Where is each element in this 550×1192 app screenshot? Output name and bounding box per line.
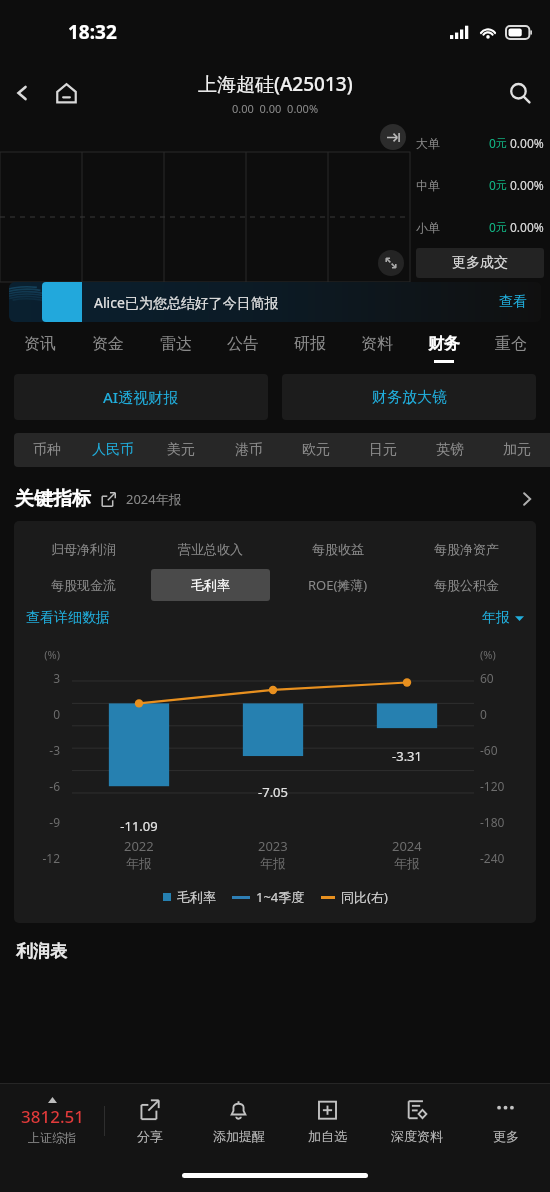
- staticText: 更多: [493, 1128, 519, 1144]
- staticText: 2024年报: [126, 490, 182, 508]
- button[interactable]: 每股现金流: [24, 569, 143, 601]
- button[interactable]: 每股收益: [278, 533, 398, 565]
- staticText: -7.05: [206, 783, 340, 801]
- button[interactable]: 财务: [410, 322, 477, 374]
- staticText: 1~4季度: [256, 888, 305, 906]
- staticText: 更多成交: [452, 254, 508, 272]
- staticText: 0.00%: [510, 219, 544, 235]
- staticText: 加自选: [308, 1128, 347, 1144]
- button[interactable]: 深度资料: [372, 1084, 461, 1158]
- staticText: 0: [489, 135, 496, 151]
- button[interactable]: Fullscreen: [378, 250, 404, 276]
- staticText: 每股公积金: [434, 577, 499, 593]
- staticText: 0.00 0.00 0.00%: [232, 101, 319, 116]
- button[interactable]: 欧元: [282, 433, 349, 467]
- staticText: 上证综指: [28, 1130, 76, 1145]
- button[interactable]: 3812.51: [0, 1097, 104, 1145]
- staticText: 大单: [416, 136, 440, 151]
- button[interactable]: 资讯: [6, 322, 74, 374]
- button[interactable]: ROE(摊薄): [278, 569, 398, 601]
- staticText: 归母净利润: [51, 541, 116, 557]
- button[interactable]: 资料: [343, 322, 410, 374]
- button[interactable]: 毛利率: [151, 569, 270, 601]
- button[interactable]: 研报: [276, 322, 343, 374]
- button[interactable]: 资金: [74, 322, 142, 374]
- staticText: 2023: [258, 837, 288, 855]
- staticText: 资金: [92, 334, 124, 354]
- button[interactable]: 更多成交: [416, 248, 544, 278]
- button[interactable]: Expand right: [380, 124, 406, 150]
- staticText: -120: [480, 778, 532, 794]
- button[interactable]: 归母净利润: [24, 533, 143, 565]
- staticText: 2022: [124, 837, 154, 855]
- button[interactable]: Search: [498, 71, 542, 115]
- staticText: 2024: [392, 837, 422, 855]
- button[interactable]: 营业总收入: [151, 533, 270, 565]
- button[interactable]: 人民币: [79, 433, 147, 467]
- staticText: 毛利率: [191, 577, 230, 593]
- staticText: 港币: [235, 441, 263, 459]
- staticText: 利润表: [16, 941, 67, 962]
- staticText: 元: [496, 220, 507, 234]
- staticText: -60: [480, 742, 532, 758]
- staticText: 财务放大镜: [372, 388, 447, 407]
- staticText: 3: [20, 670, 60, 686]
- staticText: 元: [496, 178, 507, 192]
- staticText: 欧元: [302, 441, 330, 459]
- staticText: AI透视财报: [103, 387, 179, 407]
- button[interactable]: 港币: [215, 433, 282, 467]
- button[interactable]: 查看详细数据: [26, 609, 110, 627]
- button[interactable]: 每股净资产: [406, 533, 526, 565]
- button[interactable]: 日元: [349, 433, 416, 467]
- staticText: -240: [480, 850, 532, 866]
- button[interactable]: 美元: [147, 433, 215, 467]
- staticText: 0: [20, 706, 60, 722]
- button[interactable]: 雷达: [142, 322, 209, 374]
- staticText: 元: [496, 136, 507, 150]
- button[interactable]: AI透视财报: [14, 374, 268, 420]
- staticText: 深度资料: [391, 1128, 443, 1144]
- button[interactable]: 每股公积金: [406, 569, 526, 601]
- staticText: 年报: [482, 609, 510, 627]
- button[interactable]: 公告: [209, 322, 276, 374]
- staticText: 毛利率: [177, 889, 216, 905]
- button[interactable]: 财务放大镜: [282, 374, 536, 420]
- staticText: 公告: [227, 334, 259, 354]
- staticText: 小单: [416, 220, 440, 235]
- staticText: 营业总收入: [178, 541, 243, 557]
- staticText: 3812.51: [21, 1105, 84, 1128]
- staticText: -6: [20, 778, 60, 794]
- button[interactable]: 重仓: [477, 322, 544, 374]
- staticText: 年报: [126, 855, 152, 871]
- staticText: 美元: [167, 441, 195, 459]
- staticText: 英镑: [436, 441, 464, 459]
- button[interactable]: 添加提醒: [194, 1084, 283, 1158]
- staticText: 日元: [369, 441, 397, 459]
- staticText: 年报: [394, 855, 420, 871]
- button[interactable]: 关键指标: [15, 477, 535, 521]
- staticText: 人民币: [92, 441, 134, 459]
- button[interactable]: 分享: [105, 1084, 194, 1158]
- button[interactable]: Back: [0, 71, 44, 115]
- button[interactable]: 年报: [482, 609, 524, 627]
- staticText: 分享: [137, 1128, 163, 1144]
- staticText: (%): [20, 647, 60, 662]
- staticText: 0: [489, 177, 496, 193]
- staticText: Alice已为您总结好了今日简报: [94, 293, 279, 312]
- staticText: (%): [480, 647, 532, 662]
- staticText: 研报: [294, 334, 326, 354]
- staticText: 中单: [416, 178, 440, 193]
- button[interactable]: Alice已为您总结好了今日简报: [9, 282, 541, 322]
- staticText: 资讯: [24, 334, 56, 354]
- button[interactable]: 加元: [483, 433, 550, 467]
- button[interactable]: 更多: [461, 1084, 550, 1158]
- staticText: 60: [480, 670, 532, 686]
- staticText: -9: [20, 814, 60, 830]
- button[interactable]: Home: [44, 71, 88, 115]
- button[interactable]: 英镑: [416, 433, 483, 467]
- staticText: -3: [20, 742, 60, 758]
- button[interactable]: 币种: [14, 433, 79, 467]
- button[interactable]: 加自选: [283, 1084, 372, 1158]
- staticText: 币种: [33, 441, 61, 459]
- staticText: 18:32: [68, 19, 117, 45]
